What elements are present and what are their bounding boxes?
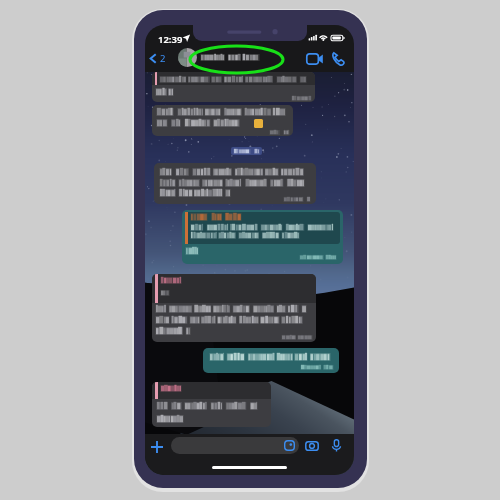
- button[interactable]: [152, 382, 271, 427]
- button[interactable]: Call: [326, 48, 350, 70]
- button[interactable]: Voice message: [327, 436, 345, 454]
- button[interactable]: Sticker: [284, 440, 295, 451]
- button[interactable]: [152, 274, 316, 342]
- button[interactable]: Video call: [302, 48, 326, 70]
- button[interactable]: [152, 105, 293, 136]
- staticText: 2: [160, 52, 166, 65]
- button[interactable]: [178, 48, 259, 67]
- button[interactable]: [152, 72, 315, 102]
- button[interactable]: [154, 163, 316, 204]
- button[interactable]: Camera: [303, 436, 321, 454]
- button[interactable]: [182, 210, 343, 264]
- button[interactable]: Back: [148, 51, 168, 66]
- staticText: 12:39: [158, 33, 183, 46]
- button[interactable]: [203, 348, 339, 373]
- button[interactable]: Attach: [147, 437, 167, 457]
- button[interactable]: Sticker: [171, 437, 299, 454]
